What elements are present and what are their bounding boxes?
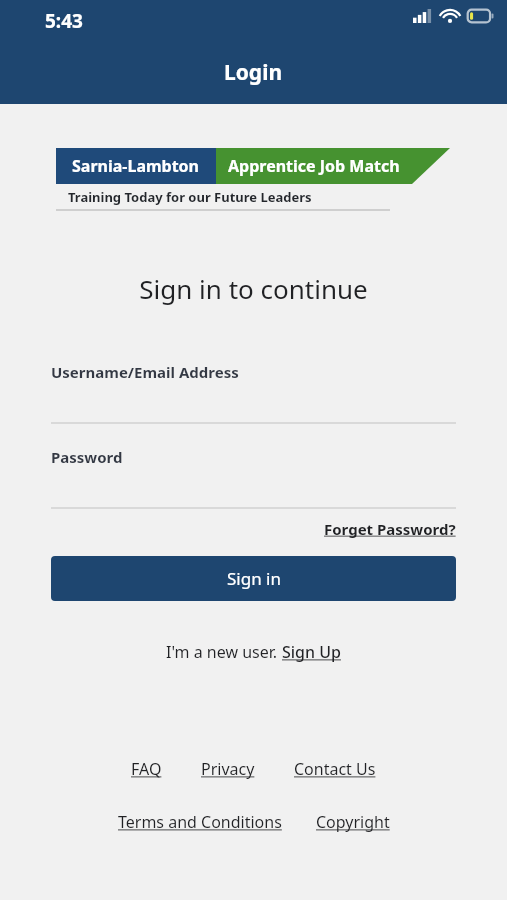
other: Cellular signal: [413, 9, 432, 23]
other: Wi-Fi: [441, 9, 459, 23]
staticText: Training Today for our Future Leaders: [68, 188, 312, 206]
button[interactable]: Sign Up: [282, 641, 341, 663]
staticText: Forget Password?: [324, 519, 456, 539]
button[interactable]: Contact Us: [294, 758, 376, 780]
staticText: Sarnia-Lambton: [72, 155, 200, 177]
staticText: Copyright: [316, 811, 390, 833]
staticText: Apprentice Job Match: [228, 155, 400, 177]
staticText: Username/Email Address: [51, 362, 239, 382]
button[interactable]: FAQ: [131, 758, 162, 780]
staticText: FAQ: [131, 758, 162, 780]
staticText: I'm a new user.: [166, 641, 282, 663]
button[interactable]: Terms and Conditions: [118, 811, 282, 833]
button[interactable]: Sign in: [51, 556, 456, 601]
staticText: Sign Up: [282, 641, 341, 663]
staticText: Contact Us: [294, 758, 376, 780]
staticText: Terms and Conditions: [118, 811, 282, 833]
staticText: Privacy: [201, 758, 255, 780]
button[interactable]: Copyright: [316, 811, 390, 833]
staticText: Password: [51, 447, 123, 467]
button[interactable]: Forget Password?: [324, 519, 456, 539]
staticText: Sign in to continue: [0, 271, 507, 306]
staticText: Login: [224, 58, 283, 87]
staticText: Sign in: [227, 567, 281, 590]
staticText: 5:43: [45, 8, 83, 34]
button[interactable]: Privacy: [201, 758, 255, 780]
other: Battery low: [467, 9, 494, 23]
